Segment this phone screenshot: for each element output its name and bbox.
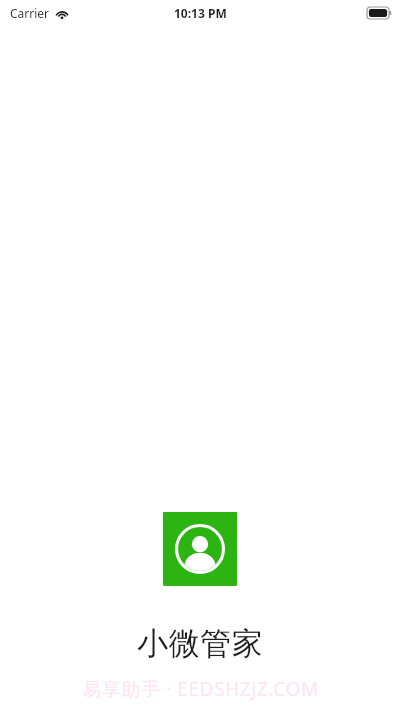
button[interactable]: 小微管家 app icon — [163, 512, 237, 586]
staticText: 10:13 PM — [174, 5, 227, 21]
staticText: 易享助手 · EEDSHZJZ.COM — [82, 676, 319, 702]
staticText: Carrier — [10, 5, 50, 21]
staticText: 小微管家 — [137, 624, 263, 663]
